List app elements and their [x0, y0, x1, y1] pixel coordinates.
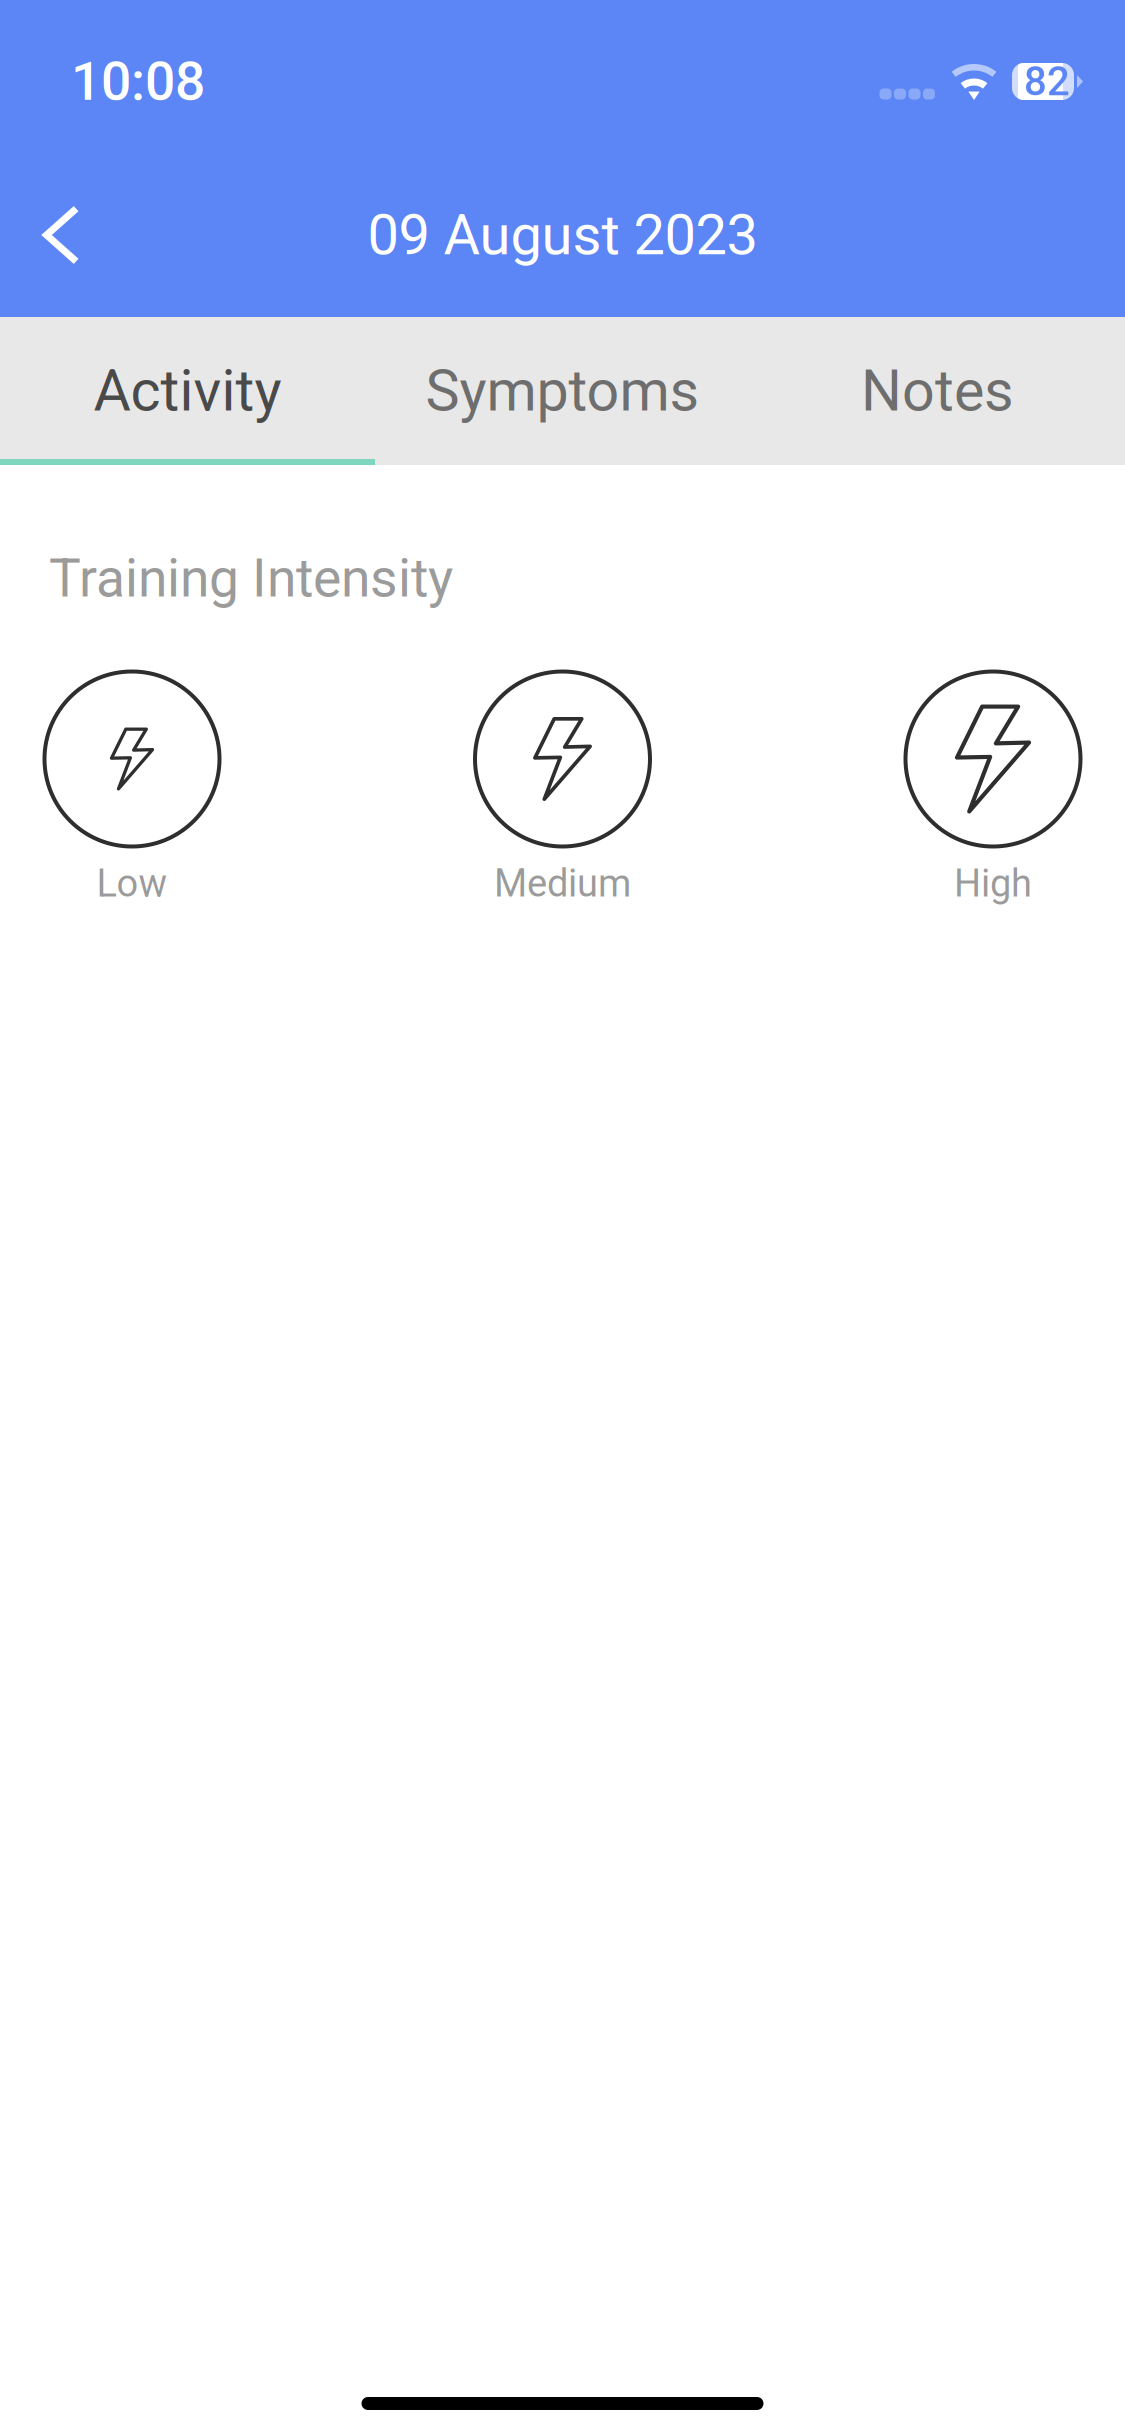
staticText: Notes [861, 357, 1014, 425]
staticText: Medium [494, 861, 631, 906]
button[interactable]: Notes [750, 317, 1125, 465]
button[interactable]: Low [42, 669, 222, 903]
staticText: Training Intensity [49, 547, 453, 609]
staticText: Symptoms [425, 357, 699, 425]
button[interactable]: Symptoms [375, 317, 750, 465]
button[interactable]: Activity [0, 317, 375, 465]
staticText: Activity [93, 357, 281, 425]
staticText: High [954, 861, 1032, 906]
staticText: 09 August 2023 [367, 202, 757, 268]
button[interactable]: Medium [472, 669, 652, 903]
staticText: 82 [1024, 58, 1070, 105]
staticText: 10:08 [71, 50, 205, 113]
staticText: Low [96, 861, 167, 906]
button[interactable]: Back [10, 187, 110, 283]
button[interactable]: High [903, 669, 1083, 903]
